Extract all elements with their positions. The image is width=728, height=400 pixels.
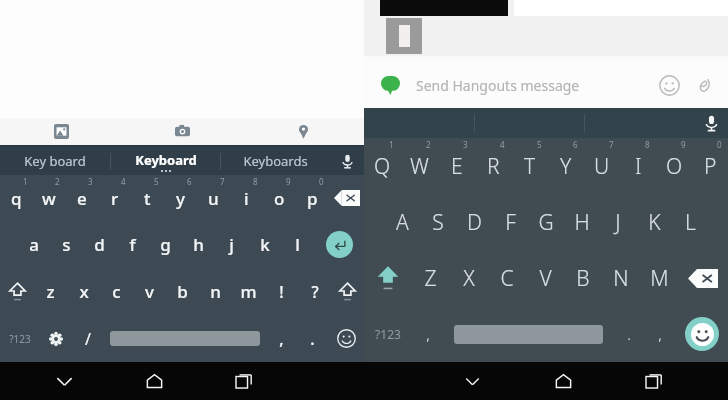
button[interactable]: Voice input	[330, 147, 364, 175]
button[interactable]: Attach	[686, 68, 720, 102]
button[interactable]: Recent apps	[227, 364, 261, 398]
button[interactable]: Shift	[331, 268, 364, 315]
button[interactable]: I	[620, 138, 656, 194]
button[interactable]: Delete	[678, 250, 728, 306]
button[interactable]: Back	[455, 364, 489, 398]
button[interactable]: u	[197, 175, 230, 221]
button[interactable]	[444, 306, 613, 362]
button[interactable]: x	[67, 268, 100, 315]
button[interactable]: Take photo	[122, 118, 243, 145]
button[interactable]: y	[164, 175, 197, 221]
button[interactable]: Delete	[329, 175, 364, 221]
button[interactable]: !	[265, 268, 298, 315]
button[interactable]: f	[116, 221, 149, 268]
button[interactable]: S	[420, 194, 456, 250]
button[interactable]: i	[230, 175, 263, 221]
button[interactable]: T	[512, 138, 548, 194]
button[interactable]: Shift	[0, 268, 34, 315]
button[interactable]: Z	[411, 250, 450, 306]
button[interactable]: s	[50, 221, 83, 268]
button[interactable]: K	[636, 194, 672, 250]
button[interactable]: Key board	[0, 147, 110, 175]
button[interactable]: k	[248, 221, 281, 268]
button[interactable]: D	[456, 194, 492, 250]
button[interactable]: U	[584, 138, 620, 194]
button[interactable]: W	[401, 138, 438, 194]
button[interactable]: z	[34, 268, 67, 315]
button[interactable]: .	[613, 306, 644, 362]
button[interactable]: X	[450, 250, 488, 306]
button[interactable]: Home	[137, 364, 171, 398]
button[interactable]: Insert photo	[0, 118, 122, 145]
staticText: ?123	[375, 326, 401, 342]
button[interactable]: q	[0, 175, 32, 221]
button[interactable]: n	[199, 268, 232, 315]
button[interactable]: Voice input	[694, 108, 728, 138]
staticText: U	[594, 152, 610, 181]
button[interactable]: H	[564, 194, 600, 250]
staticText: 1	[23, 176, 28, 187]
staticText: 5	[537, 139, 542, 150]
button[interactable]: E	[438, 138, 475, 194]
button[interactable]: Y	[548, 138, 584, 194]
button[interactable]: F	[492, 194, 528, 250]
staticText: y	[176, 187, 185, 210]
button[interactable]: Settings	[40, 315, 72, 362]
button[interactable]: B	[564, 250, 602, 306]
button[interactable]: e	[65, 175, 98, 221]
staticText: 7	[220, 176, 225, 187]
button[interactable]: Emoji	[652, 68, 686, 102]
button[interactable]: Shift	[364, 250, 411, 306]
button[interactable]	[103, 315, 266, 362]
button[interactable]: ?123	[0, 315, 40, 362]
button[interactable]: ,	[266, 315, 297, 362]
staticText: C	[500, 264, 514, 293]
button[interactable]: Keyboard	[111, 147, 220, 175]
button[interactable]: V	[526, 250, 564, 306]
button[interactable]: .	[297, 315, 328, 362]
button[interactable]: w	[32, 175, 65, 221]
button[interactable]: Enter	[314, 221, 364, 268]
button[interactable]: o	[263, 175, 296, 221]
button[interactable]: m	[232, 268, 265, 315]
button[interactable]: p	[296, 175, 329, 221]
button[interactable]: Share location	[243, 118, 364, 145]
button[interactable]: R	[475, 138, 512, 194]
button[interactable]: l	[281, 221, 314, 268]
button[interactable]: O	[656, 138, 692, 194]
button[interactable]: j	[215, 221, 248, 268]
button[interactable]: /	[72, 315, 103, 362]
button[interactable]: t	[131, 175, 164, 221]
button[interactable]: ?	[298, 268, 331, 315]
button[interactable]: h	[182, 221, 215, 268]
button[interactable]: M	[640, 250, 678, 306]
button[interactable]: Emoji	[328, 315, 364, 362]
button[interactable]: Recent apps	[637, 364, 671, 398]
button[interactable]: v	[133, 268, 166, 315]
button[interactable]: J	[600, 194, 636, 250]
button[interactable]: ?123	[364, 306, 412, 362]
button[interactable]: d	[83, 221, 116, 268]
button[interactable]: ,	[412, 306, 444, 362]
button[interactable]: Home	[546, 364, 580, 398]
button[interactable]: G	[528, 194, 564, 250]
button[interactable]: P	[692, 138, 728, 194]
button[interactable]: Emoji	[675, 306, 728, 362]
staticText: k	[260, 233, 270, 256]
button[interactable]: g	[149, 221, 182, 268]
button[interactable]: L	[672, 194, 708, 250]
button[interactable]: A	[384, 194, 420, 250]
button[interactable]: c	[100, 268, 133, 315]
button[interactable]: N	[602, 250, 640, 306]
button[interactable]: ,	[644, 306, 675, 362]
button[interactable]: r	[98, 175, 131, 221]
button[interactable]: a	[17, 221, 50, 268]
button[interactable]: Back	[47, 364, 81, 398]
button[interactable]: b	[166, 268, 199, 315]
button[interactable]: C	[488, 250, 526, 306]
button[interactable]: Q	[364, 138, 401, 194]
button[interactable]: Keyboards	[221, 147, 330, 175]
